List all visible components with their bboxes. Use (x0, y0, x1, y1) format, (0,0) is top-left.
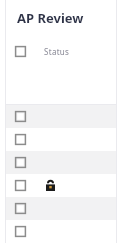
button[interactable]: Select row 5 (6, 197, 116, 220)
button[interactable]: Select row 3 (15, 157, 26, 168)
button[interactable]: Select row 4 (15, 180, 26, 191)
button[interactable]: Select row 1 (15, 111, 26, 122)
button[interactable]: Select row 5 (15, 203, 26, 214)
button[interactable]: Select row 1 (6, 105, 116, 128)
button[interactable]: Select all rows (0, 36, 121, 66)
staticText: AP Review (17, 9, 84, 27)
button[interactable]: Select row 2 (6, 128, 116, 151)
button[interactable]: Locked (46, 180, 55, 191)
button[interactable]: Select row 2 (15, 134, 26, 145)
button[interactable]: Select row 3 (6, 151, 116, 174)
button[interactable]: Select row 6 (15, 226, 26, 237)
staticText: Status (44, 46, 70, 57)
button[interactable]: Select row 6 (6, 220, 116, 243)
button[interactable]: Select row 4 (6, 174, 116, 197)
button[interactable]: Select all rows (15, 46, 26, 57)
